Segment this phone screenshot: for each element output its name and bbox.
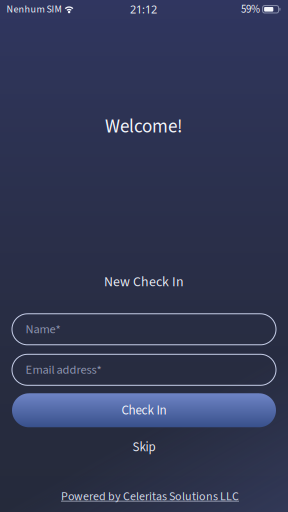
button[interactable]: Powered by Celeritas Solutions LLC	[61, 488, 239, 505]
staticText: Skip	[132, 438, 155, 456]
staticText: Powered by Celeritas Solutions LLC	[61, 488, 239, 505]
staticText: 59%	[241, 1, 260, 17]
staticText: 21:12	[130, 2, 157, 17]
button[interactable]: Skip	[12, 438, 276, 456]
staticText: Nenhum SIM	[6, 2, 61, 16]
button[interactable]: Name*	[12, 314, 276, 345]
staticText: Welcome!	[105, 113, 183, 140]
staticText: Check In	[121, 401, 166, 420]
button[interactable]: Check In	[12, 393, 276, 427]
staticText: Name*	[25, 320, 60, 338]
button[interactable]: Email address*	[12, 354, 276, 385]
staticText: New Check In	[104, 272, 184, 292]
staticText: Email address*	[25, 361, 101, 379]
